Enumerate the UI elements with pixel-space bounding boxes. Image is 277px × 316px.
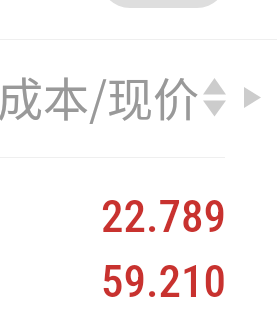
button[interactable]: Selected tab (100, 0, 227, 8)
button[interactable]: Next column (244, 87, 261, 108)
button[interactable]: Sort by cost / price (203, 78, 226, 117)
button[interactable]: 22.789 (101, 190, 227, 243)
button[interactable]: 成本/现价 (0, 63, 200, 130)
button[interactable]: 59.210 (101, 255, 227, 308)
